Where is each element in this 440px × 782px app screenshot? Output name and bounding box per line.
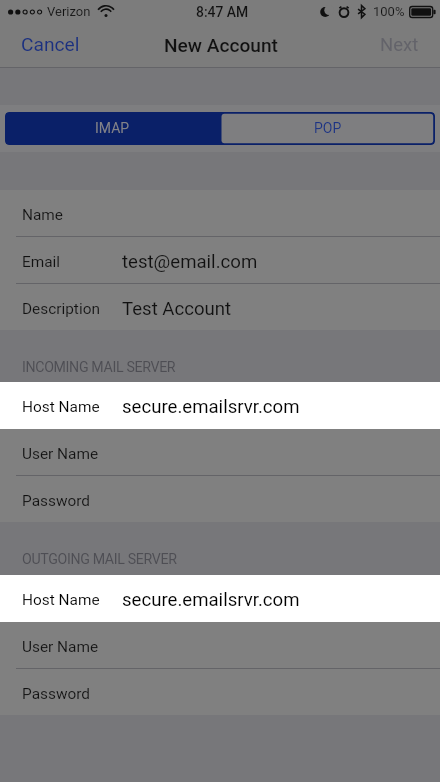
staticText: Next: [380, 34, 419, 56]
button[interactable]: Host Name: [0, 382, 440, 429]
staticText: test@email.com: [122, 251, 258, 273]
staticText: 8:47 AM: [196, 4, 249, 20]
staticText: New Account: [164, 34, 278, 56]
button[interactable]: User Name: [0, 622, 440, 669]
staticText: POP: [314, 120, 342, 136]
staticText: Cancel: [21, 33, 80, 56]
staticText: Description: [22, 300, 100, 318]
staticText: Verizon: [47, 4, 91, 19]
button[interactable]: Next: [359, 23, 440, 67]
button[interactable]: Password: [0, 476, 440, 523]
staticText: Host Name: [22, 591, 100, 609]
staticText: Name: [22, 206, 64, 224]
staticText: Test Account: [122, 298, 232, 320]
staticText: INCOMING MAIL SERVER: [22, 359, 176, 376]
button[interactable]: Host Name: [0, 575, 440, 622]
button[interactable]: Password: [0, 669, 440, 716]
staticText: 100%: [373, 4, 405, 19]
button[interactable]: POP: [220, 112, 435, 144]
staticText: secure.emailsrvr.com: [122, 589, 300, 611]
staticText: Host Name: [22, 398, 100, 416]
staticText: Email: [22, 253, 61, 271]
staticText: secure.emailsrvr.com: [122, 589, 300, 611]
button[interactable]: Host Name: [0, 575, 440, 622]
button[interactable]: Cancel: [0, 22, 101, 67]
staticText: IMAP: [95, 120, 130, 136]
button[interactable]: Host Name: [0, 382, 440, 429]
button[interactable]: Email: [0, 237, 440, 284]
staticText: User Name: [22, 445, 99, 463]
staticText: Host Name: [22, 398, 100, 416]
staticText: secure.emailsrvr.com: [122, 396, 300, 418]
button[interactable]: Host Name: [0, 382, 440, 429]
button[interactable]: Name: [0, 190, 440, 237]
button[interactable]: Host Name: [0, 575, 440, 622]
staticText: Host Name: [22, 591, 100, 609]
staticText: Password: [22, 492, 90, 510]
button[interactable]: Description: [0, 284, 440, 331]
staticText: OUTGOING MAIL SERVER: [22, 551, 177, 568]
button[interactable]: IMAP: [5, 112, 220, 144]
staticText: User Name: [22, 638, 99, 656]
staticText: secure.emailsrvr.com: [122, 396, 300, 418]
button[interactable]: User Name: [0, 429, 440, 476]
staticText: Password: [22, 685, 90, 703]
